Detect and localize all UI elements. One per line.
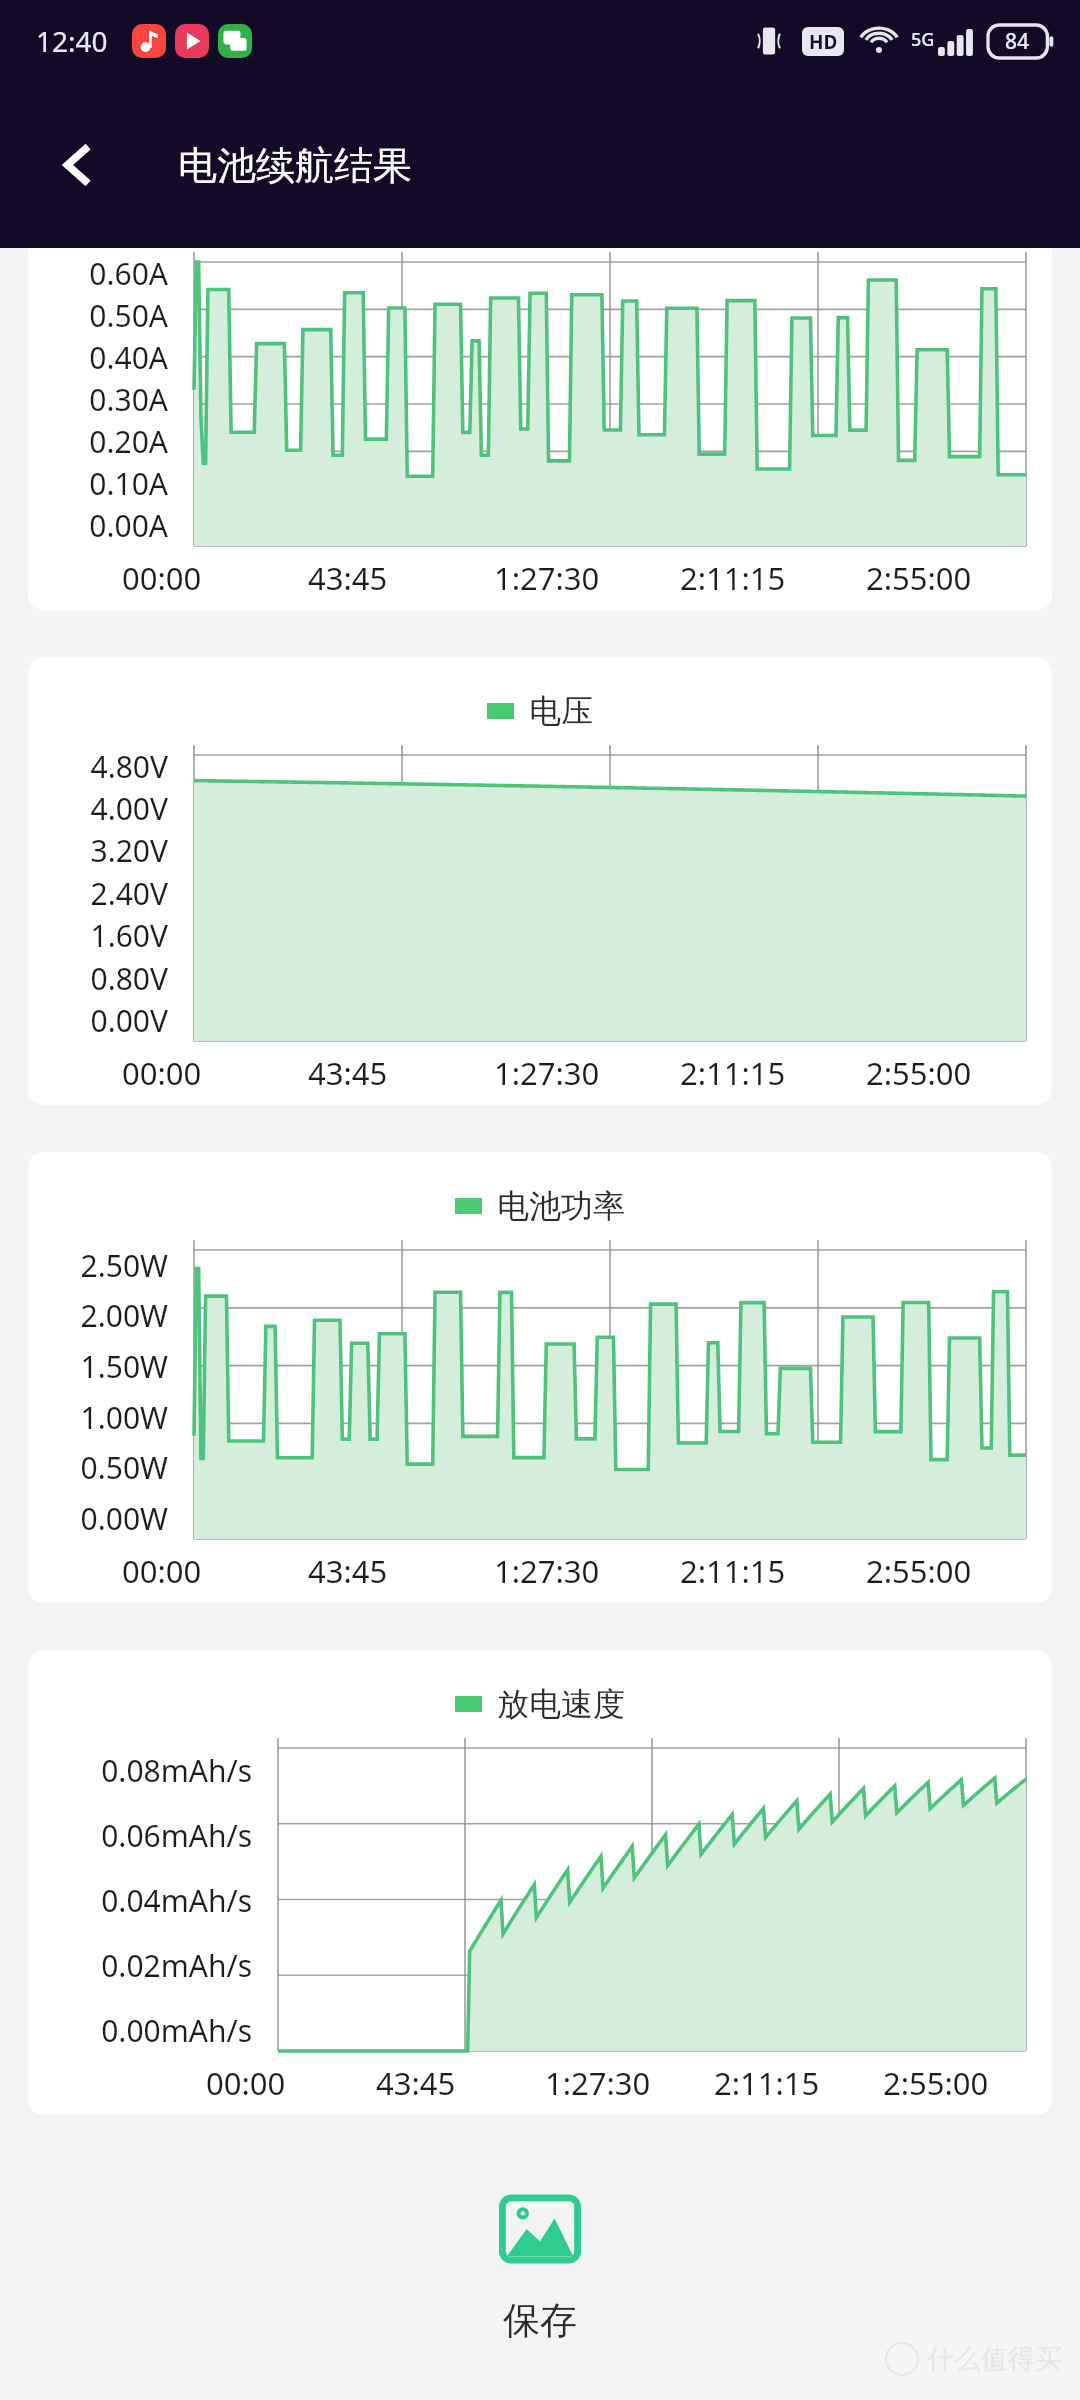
staticText: 1.50W — [80, 1346, 168, 1387]
staticText: 12:40 — [36, 22, 108, 60]
staticText: HD — [809, 29, 838, 55]
staticText: 0.02mAh/s — [101, 1945, 252, 1986]
staticText: 2:55:00 — [866, 1052, 972, 1094]
staticText: 0.50W — [80, 1447, 168, 1488]
staticText: 1.60V — [90, 915, 168, 956]
staticText: 电池续航结果 — [178, 141, 412, 190]
staticText: 2:11:15 — [680, 1550, 786, 1592]
staticText: 2:55:00 — [866, 557, 972, 599]
staticText: 2:11:15 — [714, 2062, 820, 2104]
button[interactable]: 保存 — [0, 2189, 1080, 2344]
staticText: 0.60A — [89, 253, 168, 294]
staticText: 0.00mAh/s — [101, 2010, 252, 2051]
staticText: 00:00 — [122, 1550, 202, 1592]
staticText: 保存 — [503, 2297, 577, 2344]
staticText: 什么值得买 — [927, 2342, 1062, 2376]
button[interactable]: 放电速度 — [28, 1650, 1052, 2115]
staticText: 0.30A — [89, 379, 168, 420]
staticText: 2.00W — [80, 1295, 168, 1336]
staticText: 2.50W — [80, 1245, 168, 1286]
staticText: 电池功率 — [497, 1186, 625, 1226]
staticText: 2:11:15 — [680, 557, 786, 599]
staticText: 00:00 — [122, 1052, 202, 1094]
staticText: 0.80V — [90, 958, 168, 999]
staticText: 1:27:30 — [494, 557, 600, 599]
staticText: 3.20V — [90, 830, 168, 871]
staticText: 1:27:30 — [494, 1052, 600, 1094]
button[interactable]: 电池功率 — [28, 1152, 1052, 1603]
other: 保存 — [500, 2189, 580, 2269]
button[interactable]: 电压 — [28, 657, 1052, 1105]
staticText: 1:27:30 — [494, 1550, 600, 1592]
staticText: 0.00V — [90, 1000, 168, 1041]
staticText: 4.80V — [90, 746, 168, 787]
staticText: 4.00V — [90, 788, 168, 829]
staticText: 43:45 — [308, 557, 388, 599]
staticText: 00:00 — [122, 557, 202, 599]
staticText: 0.20A — [89, 421, 168, 462]
staticText: 84 — [1005, 27, 1030, 56]
staticText: 电压 — [529, 691, 593, 731]
staticText: 43:45 — [308, 1052, 388, 1094]
staticText: 0.06mAh/s — [101, 1815, 252, 1856]
staticText: 0.08mAh/s — [101, 1750, 252, 1791]
staticText: 0.40A — [89, 337, 168, 378]
staticText: 0.04mAh/s — [101, 1880, 252, 1921]
button[interactable]: 0.60A — [28, 248, 1052, 610]
staticText: 1.00W — [80, 1397, 168, 1438]
staticText: 2:55:00 — [866, 1550, 972, 1592]
staticText: 1:27:30 — [545, 2062, 651, 2104]
staticText: 0.50A — [89, 295, 168, 336]
staticText: 放电速度 — [497, 1684, 625, 1724]
staticText: 2.40V — [90, 873, 168, 914]
staticText: 0.10A — [89, 463, 168, 504]
staticText: 43:45 — [376, 2062, 456, 2104]
staticText: 2:11:15 — [680, 1052, 786, 1094]
staticText: 2:55:00 — [883, 2062, 989, 2104]
staticText: 0.00W — [80, 1498, 168, 1539]
staticText: 00:00 — [206, 2062, 286, 2104]
button[interactable]: 返回 — [40, 127, 116, 203]
staticText: 0.00A — [89, 505, 168, 546]
staticText: 43:45 — [308, 1550, 388, 1592]
staticText: 5G — [911, 27, 935, 52]
